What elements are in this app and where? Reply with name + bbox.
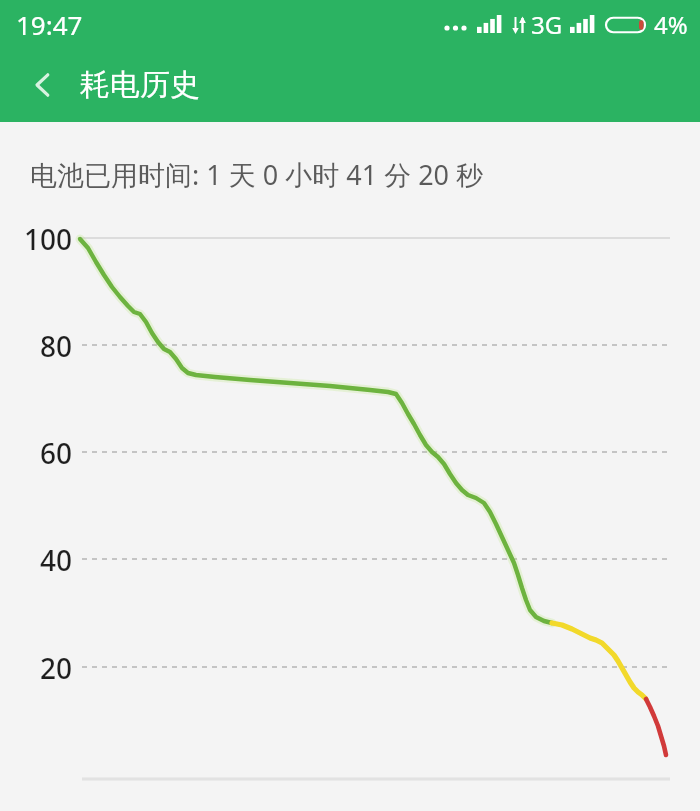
staticText: 4% xyxy=(654,8,688,41)
staticText: 耗电历史 xyxy=(80,66,200,104)
button[interactable]: Back xyxy=(16,58,70,112)
staticText: 19:47 xyxy=(16,7,83,42)
staticText: 40 xyxy=(0,541,72,579)
staticText: 3G xyxy=(531,8,563,41)
staticText: 电池已用时间: 1 天 0 小时 41 分 20 秒 xyxy=(30,156,484,193)
staticText: 60 xyxy=(0,434,72,472)
staticText: 80 xyxy=(0,327,72,365)
staticText: 100 xyxy=(0,220,72,258)
staticText: 20 xyxy=(0,649,72,687)
